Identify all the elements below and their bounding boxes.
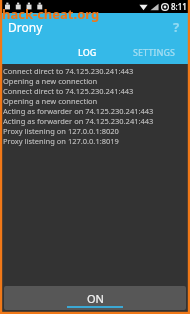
staticText: Proxy listening on 127.0.0.1:8020 [3,126,119,136]
staticText: Acting as forwarder on 74.125.230.241:44… [3,106,154,116]
staticText: Proxy listening on 127.0.0.1:8019 [3,136,119,146]
button[interactable]: LOG [56,40,118,64]
staticText: 8:11 [171,1,187,12]
staticText: Connect direct to 74.125.230.241:443 [3,66,134,76]
staticText: hack-cheat.org [2,5,100,23]
staticText: Opening a new connection [3,96,98,106]
staticText: Drony [8,19,43,35]
staticText: ? [173,18,180,36]
staticText: Acting as forwarder on 74.125.230.241:44… [3,116,154,126]
staticText: Connect direct to 74.125.230.241:443 [3,86,134,96]
button[interactable]: ON [4,286,186,310]
staticText: Opening a new connection [3,76,98,86]
staticText: ON [87,291,104,306]
button[interactable]: SETTINGS [118,40,190,64]
button[interactable]: Help [162,13,190,40]
staticText: SETTINGS [133,46,175,58]
staticText: LOG [78,46,97,58]
